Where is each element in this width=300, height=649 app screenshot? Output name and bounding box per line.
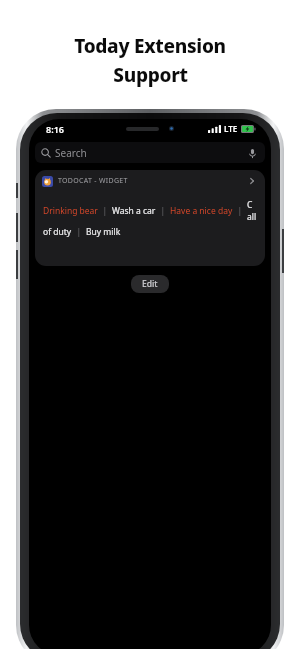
button[interactable]: Have a nice day: [170, 205, 233, 217]
staticText: |: [72, 226, 86, 238]
staticText: |: [233, 205, 247, 217]
button[interactable]: Call: [247, 199, 257, 223]
button[interactable]: Buy milk: [86, 226, 121, 238]
button[interactable]: Edit: [131, 275, 169, 293]
staticText: Support: [113, 62, 188, 88]
staticText: Search: [55, 146, 87, 160]
staticText: Today Extension: [74, 33, 226, 59]
staticText: Edit: [142, 278, 158, 290]
staticText: TODOCAT - WIDGET: [58, 176, 128, 186]
staticText: |: [98, 205, 112, 217]
button[interactable]: Voice search: [245, 146, 259, 160]
button[interactable]: TODOCAT - WIDGET: [35, 170, 265, 192]
button[interactable]: Drinking bear: [43, 205, 98, 217]
staticText: 8:16: [46, 123, 64, 135]
staticText: |: [156, 205, 170, 217]
button[interactable]: Search: [35, 142, 265, 163]
other: Open widget: [246, 175, 258, 187]
button[interactable]: of duty: [43, 226, 72, 238]
staticText: LTE: [224, 123, 238, 134]
button[interactable]: Wash a car: [112, 205, 156, 217]
